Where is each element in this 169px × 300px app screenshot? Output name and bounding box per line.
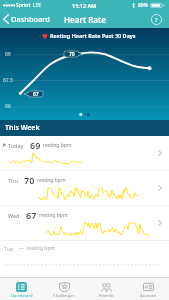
staticText: Heart Rate	[64, 14, 106, 25]
staticText: 67	[26, 209, 37, 221]
staticText: Dashboard	[11, 293, 33, 299]
button[interactable]: Friends	[85, 278, 127, 300]
staticText: resting bpm	[37, 177, 66, 184]
staticText: — resting bpm	[19, 245, 56, 252]
staticText: 89%	[138, 2, 148, 9]
staticText: 11:12 AM	[72, 2, 97, 9]
staticText: 67.5	[3, 77, 13, 84]
staticText: 67	[33, 91, 39, 97]
staticText: 69	[5, 51, 11, 58]
staticText: LTE	[33, 2, 42, 9]
staticText: Dashboard	[11, 14, 50, 24]
staticText: Thu	[8, 177, 18, 184]
staticText: Tue	[4, 245, 14, 252]
button[interactable]: Tue	[0, 241, 169, 276]
staticText: resting bpm	[43, 142, 72, 149]
staticText: Wed	[8, 212, 20, 219]
staticText: 69	[30, 139, 41, 151]
button[interactable]: Today	[0, 136, 169, 171]
staticText: Resting Heart Rate Past 30 Days	[50, 32, 136, 39]
staticText: Sprint	[16, 2, 31, 9]
button[interactable]: Challenges	[43, 278, 85, 300]
staticText: Account	[140, 293, 156, 299]
button[interactable]: Dashboard	[0, 14, 54, 24]
staticText: ?	[155, 16, 158, 23]
button[interactable]: Wed	[0, 206, 169, 241]
staticText: Friends	[99, 293, 114, 299]
staticText: Today	[8, 142, 24, 149]
staticText: 70	[24, 174, 35, 186]
button[interactable]: Dashboard	[0, 278, 43, 300]
staticText: resting bpm	[39, 212, 68, 219]
button[interactable]: Help	[151, 14, 162, 25]
staticText: This Week	[5, 123, 40, 133]
staticText: 66	[5, 103, 11, 110]
staticText: 70	[69, 51, 75, 57]
button[interactable]: Account	[127, 278, 169, 300]
button[interactable]: Thu	[0, 171, 169, 206]
staticText: Challenges	[53, 293, 75, 299]
